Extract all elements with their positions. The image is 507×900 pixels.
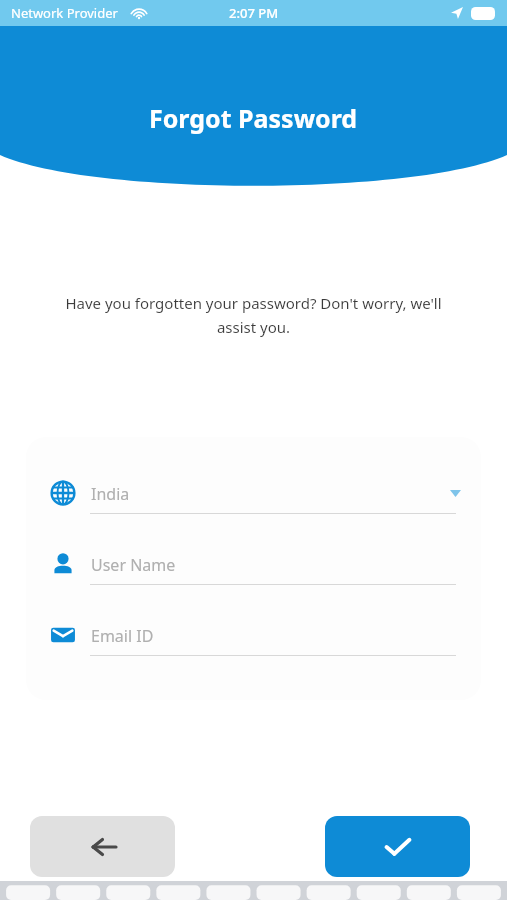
staticText: 2:07 PM: [229, 4, 279, 22]
staticText: Email ID: [91, 625, 154, 647]
staticText: Network Provider: [11, 4, 118, 22]
button[interactable]: Submit: [325, 816, 470, 877]
button[interactable]: India: [26, 473, 481, 531]
button[interactable]: Email ID: [26, 615, 481, 673]
button[interactable]: Back: [30, 816, 175, 877]
staticText: User Name: [91, 554, 176, 576]
button[interactable]: User Name: [26, 544, 481, 602]
staticText: Have you forgotten your password? Don't …: [57, 293, 450, 337]
staticText: Forgot Password: [149, 101, 358, 135]
staticText: India: [91, 483, 130, 505]
